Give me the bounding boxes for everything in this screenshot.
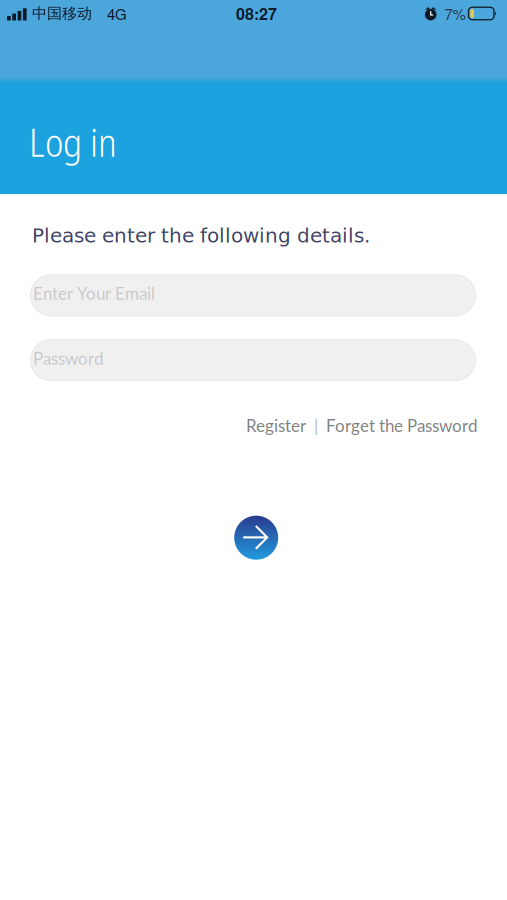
staticText: Log in — [29, 115, 117, 168]
button[interactable]: Enter Your Email — [30, 274, 476, 316]
staticText: 中国移动 — [32, 4, 92, 23]
button[interactable]: Log in — [234, 516, 278, 560]
button[interactable]: Forget the Password — [326, 415, 478, 436]
button[interactable]: Register — [246, 415, 306, 436]
staticText: 4G — [107, 3, 127, 24]
staticText: Enter Your Email — [33, 283, 155, 303]
staticText: Register — [246, 415, 306, 436]
button[interactable]: Password — [30, 339, 476, 381]
staticText: | — [314, 415, 318, 436]
staticText: Forget the Password — [326, 415, 478, 436]
staticText: Please enter the following details. — [32, 224, 370, 247]
staticText: Password — [33, 348, 104, 368]
staticText: 08:27 — [236, 2, 277, 25]
staticText: 7% — [444, 3, 465, 24]
